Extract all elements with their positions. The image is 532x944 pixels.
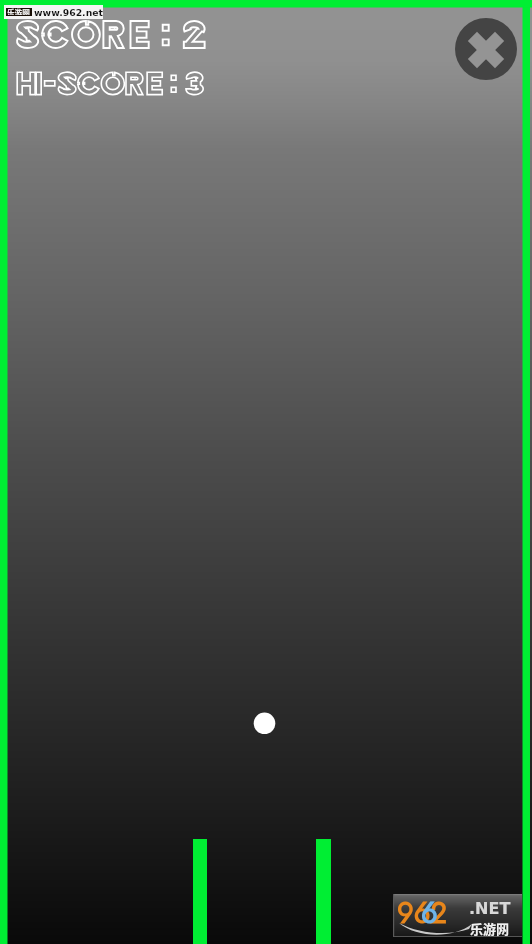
staticText: 乐游网 <box>470 919 510 938</box>
staticText: .NET <box>469 899 511 918</box>
staticText: 乐游网 <box>7 7 30 15</box>
staticText: 962 <box>397 892 447 934</box>
staticText: www.962.net <box>34 7 104 18</box>
button[interactable]: Close <box>455 18 517 80</box>
staticText: 6 <box>421 892 438 934</box>
